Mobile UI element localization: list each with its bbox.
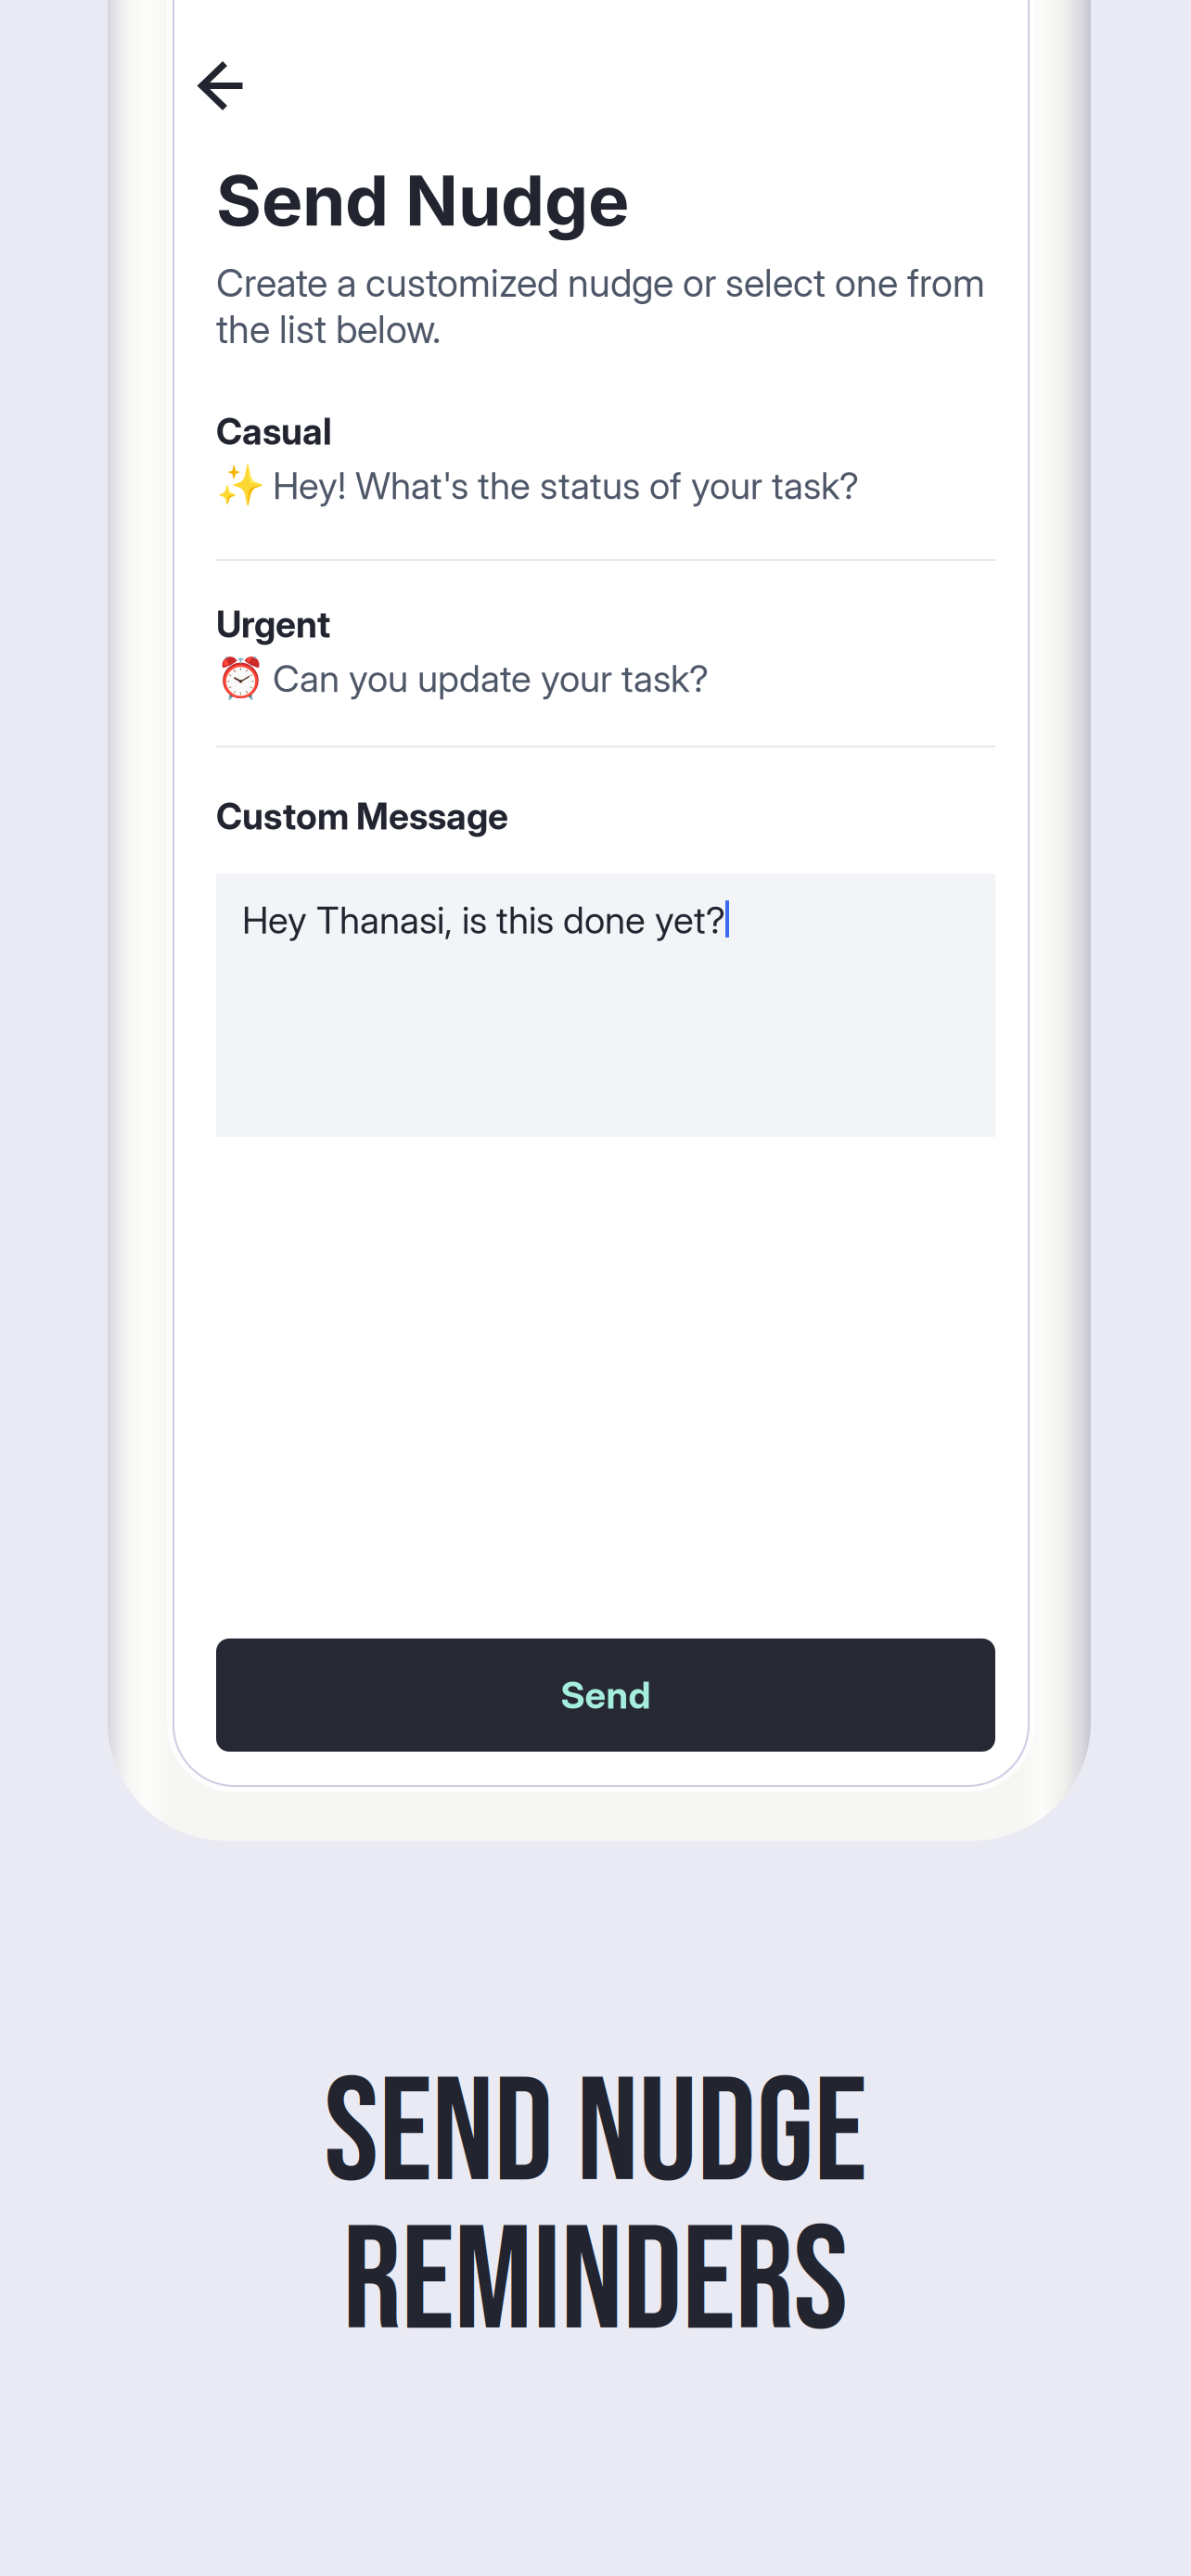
- button[interactable]: Hey Thanasi, is this done yet?: [216, 874, 995, 1137]
- staticText: Custom Message: [216, 795, 508, 838]
- staticText: Create a customized nudge or select one …: [216, 260, 985, 352]
- staticText: Hey! What's the status of your task?: [273, 463, 859, 508]
- staticText: ⏰: [216, 655, 265, 702]
- staticText: Hey Thanasi, is this done yet?: [242, 898, 725, 942]
- staticText: REMINDERS: [343, 2196, 848, 2371]
- button[interactable]: Send: [216, 1639, 995, 1752]
- button[interactable]: Casual: [216, 410, 992, 509]
- staticText: Send: [561, 1673, 651, 1718]
- staticText: Send Nudge: [216, 159, 629, 242]
- staticText: Can you update your task?: [273, 656, 709, 701]
- staticText: Casual: [216, 410, 332, 453]
- button[interactable]: Back: [198, 63, 274, 136]
- staticText: Urgent: [216, 603, 330, 646]
- staticText: ✨: [216, 463, 265, 509]
- button[interactable]: Urgent: [216, 603, 992, 702]
- staticText: SEND NUDGE: [324, 2047, 867, 2223]
